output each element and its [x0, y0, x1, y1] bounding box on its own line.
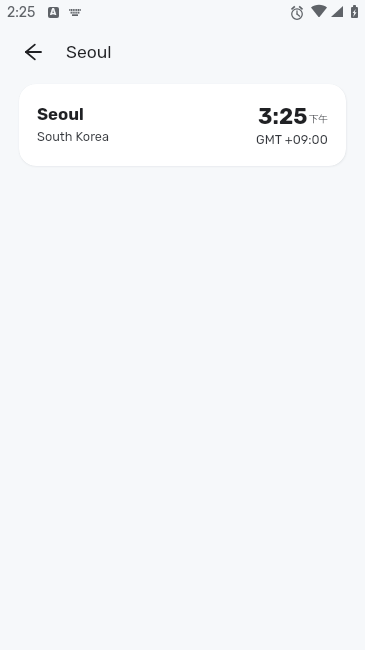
staticText: Seoul — [66, 42, 112, 63]
staticText: South Korea — [37, 129, 109, 144]
staticText: Seoul — [37, 104, 84, 124]
button[interactable]: Back — [15, 34, 51, 70]
staticText: 下午 — [309, 113, 328, 125]
staticText: A — [50, 7, 57, 18]
staticText: 3:25 — [258, 103, 308, 129]
button[interactable]: Seoul — [19, 84, 346, 166]
staticText: 2:25 — [7, 4, 36, 21]
staticText: GMT +09:00 — [256, 132, 328, 147]
